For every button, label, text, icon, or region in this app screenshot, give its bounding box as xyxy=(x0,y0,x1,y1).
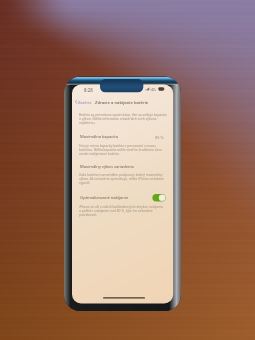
staticText: iPhone sa učí z vašich každodenných návy… xyxy=(79,205,163,217)
staticText: 4G xyxy=(151,87,156,92)
staticText: Batéria xyxy=(78,100,92,105)
button[interactable]: Optimalizované nabíjanie xyxy=(152,193,167,202)
staticText: 85 % xyxy=(155,135,164,140)
staticText: Toto je miera kapacity batérie v porovna… xyxy=(79,144,162,156)
button[interactable] xyxy=(73,97,172,107)
staticText: Maximálny výkon zariadenia xyxy=(80,164,134,170)
staticText: Batéria sa prirodzene opotrebúva, čím sa… xyxy=(79,113,167,125)
staticText: Optimalizované nabíjanie xyxy=(80,195,129,201)
staticText: 8:28 xyxy=(84,87,93,93)
staticText: Zdravie a nabíjanie batérie xyxy=(95,100,149,106)
staticText: Maximálna kapacita xyxy=(80,134,118,140)
staticText: Vaša batéria momentálne podporuje bežný … xyxy=(79,173,165,185)
